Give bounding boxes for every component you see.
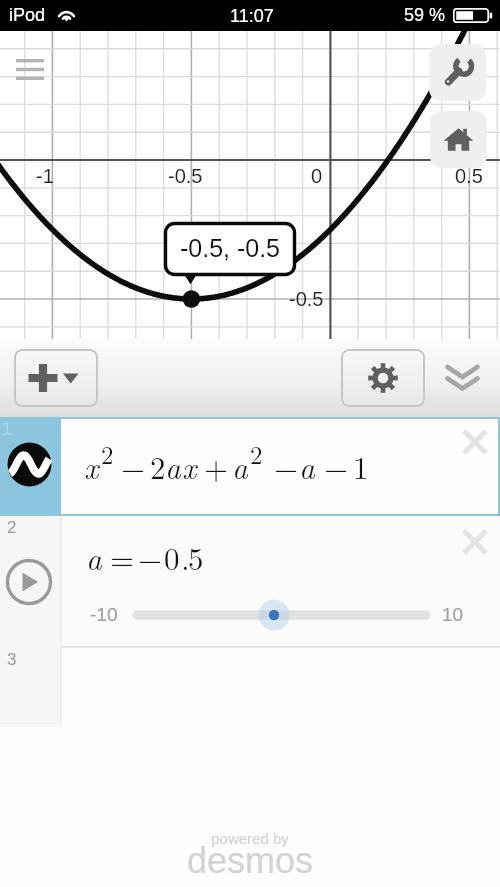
button[interactable]: Menu [6, 45, 54, 93]
staticText: − [324, 444, 349, 488]
button[interactable]: Home [430, 111, 487, 168]
staticText: − [121, 444, 146, 488]
staticText: . [181, 535, 190, 579]
staticText: 1 [2, 419, 13, 439]
staticText: x [182, 444, 197, 488]
staticText: -1 [36, 165, 54, 187]
staticText: 5 [188, 535, 204, 579]
button[interactable]: Play animation [5, 558, 53, 606]
staticText: x [84, 444, 99, 488]
staticText: a [299, 444, 315, 488]
staticText: a [86, 535, 102, 579]
button[interactable]: Parameter slider [121, 600, 441, 632]
button[interactable]: Delete expression [452, 519, 498, 565]
staticText: + [204, 444, 229, 488]
staticText: a [165, 444, 181, 488]
button[interactable]: Collapse panel [436, 349, 488, 406]
button[interactable]: Add expression [14, 349, 98, 407]
staticText: desmos [0, 840, 500, 880]
staticText: = [110, 535, 135, 579]
staticText: − [274, 444, 299, 488]
staticText: -0.5 [168, 165, 203, 187]
staticText: 0 [311, 165, 323, 187]
staticText: 1 [353, 444, 369, 488]
staticText: − [138, 535, 163, 579]
staticText: 11:07 [230, 6, 274, 26]
button[interactable]: 1 [0, 417, 61, 516]
staticText: -0.5, -0.5 [164, 234, 296, 262]
button[interactable]: x [61, 417, 500, 516]
staticText: iPod [9, 5, 46, 25]
staticText: powered by [0, 830, 500, 847]
staticText: 2 [250, 436, 263, 471]
staticText: 59 % [404, 5, 446, 25]
staticText: 2 [101, 436, 114, 471]
staticText: 0.5 [455, 165, 483, 187]
staticText: 10 [442, 604, 464, 625]
staticText: 2 [150, 444, 166, 488]
button[interactable]: Tools [429, 44, 486, 101]
staticText: 0 [164, 535, 180, 579]
staticText: 3 [7, 650, 17, 669]
button[interactable]: Graph settings [341, 349, 425, 407]
staticText: 2 [7, 518, 17, 537]
staticText: a [232, 444, 248, 488]
staticText: -0.5 [289, 288, 324, 310]
staticText: -10 [90, 604, 118, 625]
button[interactable]: Delete expression [452, 419, 498, 465]
button[interactable]: a [61, 516, 500, 648]
